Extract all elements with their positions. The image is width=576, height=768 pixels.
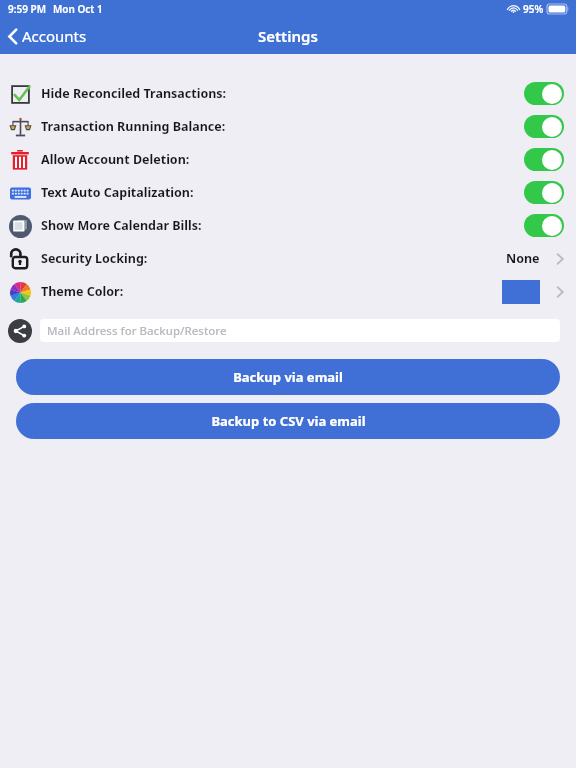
button[interactable]: Text Auto Capitalization: (524, 181, 564, 204)
staticText: Transaction Running Balance: (41, 118, 226, 135)
staticText: Allow Account Deletion: (41, 151, 190, 168)
button[interactable]: Show More Calendar Bills: (0, 209, 576, 242)
staticText: Theme Color: (41, 283, 124, 300)
button[interactable]: Allow Account Deletion: (0, 143, 576, 176)
staticText: Accounts (22, 26, 87, 46)
button[interactable]: Text Auto Capitalization: (0, 176, 576, 209)
staticText: Show More Calendar Bills: (41, 217, 202, 234)
staticText: 95% (523, 2, 544, 16)
button[interactable]: Hide Reconciled Transactions: (524, 82, 564, 105)
button[interactable]: Show More Calendar Bills: (524, 214, 564, 237)
staticText: Backup via email (233, 368, 343, 386)
button[interactable]: Accounts (0, 22, 97, 50)
button[interactable]: Transaction Running Balance: (0, 110, 576, 143)
staticText: Settings (258, 26, 318, 46)
button[interactable]: Hide Reconciled Transactions: (0, 77, 576, 110)
staticText: Mail Address for Backup/Restore (47, 323, 227, 339)
button[interactable]: Backup via email (16, 359, 560, 395)
staticText: Mon Oct 1 (53, 2, 103, 16)
staticText: Hide Reconciled Transactions: (41, 85, 227, 102)
staticText: Text Auto Capitalization: (41, 184, 194, 201)
button[interactable]: Mail Address for Backup/Restore (40, 319, 560, 342)
button[interactable]: Share (8, 319, 32, 343)
staticText: Backup to CSV via email (211, 412, 366, 430)
button[interactable]: Security Locking: (0, 242, 576, 275)
staticText: Security Locking: (41, 250, 148, 267)
button[interactable]: Theme Color: (0, 275, 576, 308)
staticText: 9:59 PM (8, 2, 46, 16)
button[interactable]: Transaction Running Balance: (524, 115, 564, 138)
staticText: None (506, 250, 540, 267)
button[interactable]: Allow Account Deletion: (524, 148, 564, 171)
button[interactable]: Backup to CSV via email (16, 403, 560, 439)
